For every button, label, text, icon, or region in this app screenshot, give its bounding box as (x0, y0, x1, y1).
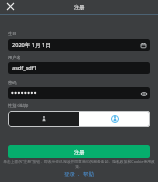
button[interactable]: 2020年 1月 1日 (8, 39, 150, 51)
button[interactable]: asdf_sdf1 (8, 62, 150, 74)
button[interactable]: 帮助 (83, 171, 94, 178)
staticText: 注册 (74, 149, 84, 155)
staticText: 单击上面的“注册”按钮，即表示你已阅读并同意我们的服务条款、隐私政策和Cooki… (2, 159, 156, 169)
button[interactable]: Female (79, 111, 150, 127)
button[interactable]: Male (8, 111, 79, 127)
staticText: 2020年 1月 1日 (12, 41, 51, 49)
other: Pick date (140, 42, 147, 49)
staticText: · (78, 171, 80, 178)
button[interactable]: Close (3, 0, 17, 13)
staticText: 用户名 (8, 55, 21, 60)
staticText: asdf_sdf1 (12, 64, 37, 72)
button[interactable]: 登录 (64, 171, 75, 178)
staticText: 生日 (8, 31, 17, 36)
staticText: 注册 (74, 4, 84, 10)
other: Show password (140, 90, 147, 97)
button[interactable]: Show password (8, 87, 150, 99)
staticText: 密码 (8, 80, 17, 85)
button[interactable]: 注册 (8, 145, 150, 158)
staticText: 性别 (选填) (8, 103, 29, 109)
